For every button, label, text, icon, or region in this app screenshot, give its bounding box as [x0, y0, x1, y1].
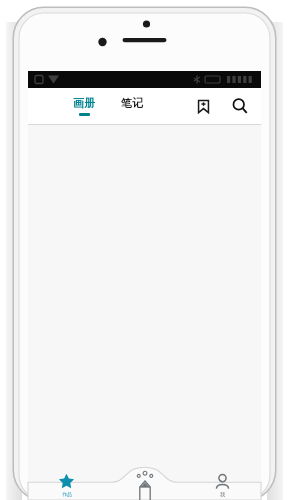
- button[interactable]: Create: [105, 466, 183, 500]
- staticText: 画册: [73, 96, 95, 110]
- button[interactable]: 笔记: [115, 94, 149, 118]
- button[interactable]: New drawing: [132, 472, 158, 500]
- button[interactable]: Bookmarks: [188, 91, 218, 121]
- staticText: 作品: [62, 491, 72, 497]
- button[interactable]: 我: [183, 466, 261, 500]
- button[interactable]: 作品: [28, 466, 105, 500]
- button[interactable]: Search: [224, 90, 256, 122]
- staticText: 笔记: [121, 96, 143, 110]
- staticText: 我: [220, 491, 225, 497]
- button[interactable]: 画册: [67, 94, 101, 118]
